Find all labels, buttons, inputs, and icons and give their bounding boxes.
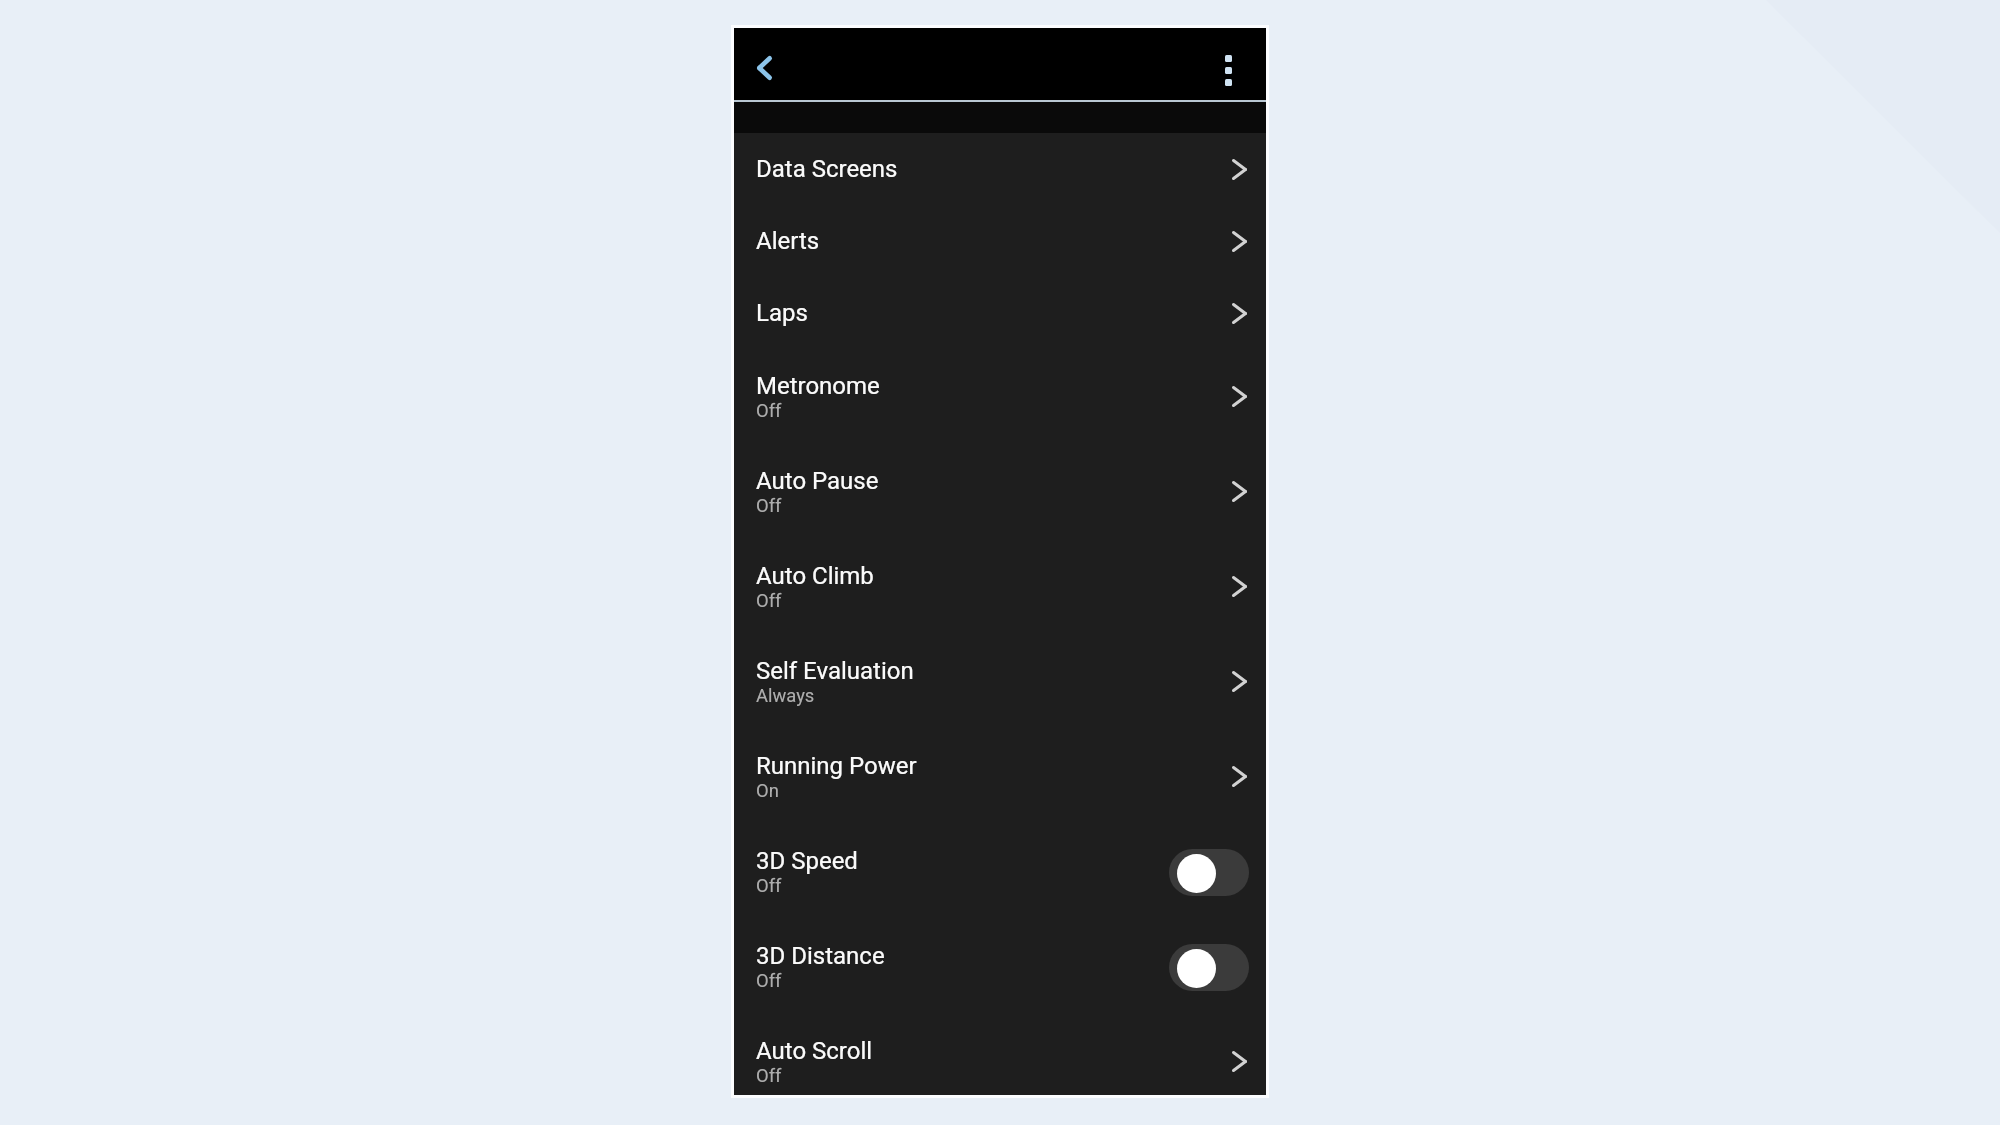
staticText: Auto Pause [756, 467, 879, 495]
button[interactable]: Toggle [1169, 943, 1249, 991]
button[interactable]: Auto Pause [734, 444, 1266, 539]
button[interactable]: Data Screens [734, 133, 1266, 205]
staticText: Off [756, 495, 782, 517]
button[interactable]: Auto Climb [734, 539, 1266, 634]
staticText: Metronome [756, 372, 880, 400]
staticText: Off [756, 400, 782, 422]
staticText: Auto Climb [756, 562, 874, 590]
staticText: On [756, 780, 779, 802]
button[interactable]: Auto Scroll [734, 1014, 1266, 1095]
button[interactable]: Laps [734, 277, 1266, 349]
button[interactable]: Self Evaluation [734, 634, 1266, 729]
staticText: 3D Distance [756, 942, 885, 970]
staticText: Running Power [756, 752, 917, 780]
staticText: Auto Scroll [756, 1037, 873, 1065]
button[interactable]: Running Power [734, 729, 1266, 824]
staticText: Laps [756, 299, 808, 327]
staticText: Self Evaluation [756, 657, 914, 685]
button[interactable]: Toggle [1169, 848, 1249, 896]
button[interactable]: More options [1206, 48, 1250, 92]
staticText: Off [756, 970, 782, 992]
staticText: Always [756, 685, 815, 707]
staticText: Off [756, 875, 782, 897]
staticText: Alerts [756, 227, 820, 255]
staticText: Off [756, 590, 782, 612]
button[interactable]: Metronome [734, 349, 1266, 444]
button[interactable]: Back [739, 43, 789, 93]
button[interactable]: Alerts [734, 205, 1266, 277]
staticText: 3D Speed [756, 847, 858, 875]
button[interactable]: 3D Speed [734, 824, 1266, 919]
staticText: Off [756, 1065, 782, 1087]
button[interactable]: 3D Distance [734, 919, 1266, 1014]
staticText: Data Screens [756, 155, 898, 183]
